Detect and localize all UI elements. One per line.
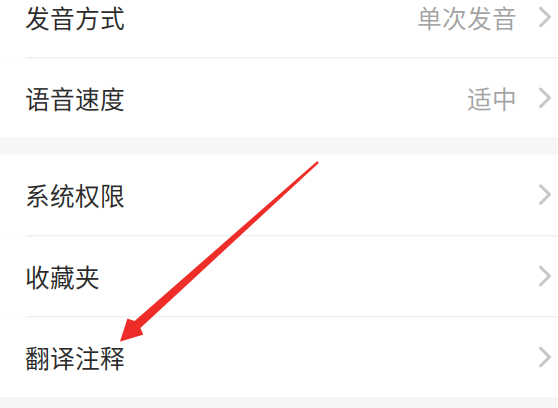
button[interactable]: 语音速度 — [0, 58, 558, 137]
staticText: 翻译注释 — [25, 339, 125, 375]
button[interactable]: 发音方式 — [0, 0, 558, 57]
button[interactable]: 翻译注释 — [0, 317, 558, 397]
staticText: 发音方式 — [25, 0, 125, 35]
staticText: 系统权限 — [25, 177, 125, 213]
staticText: 适中 — [467, 80, 517, 116]
staticText: 语音速度 — [25, 80, 125, 116]
staticText: 收藏夹 — [25, 258, 100, 294]
button[interactable]: 收藏夹 — [0, 236, 558, 316]
staticText: 单次发音 — [417, 0, 517, 35]
button[interactable]: 系统权限 — [0, 154, 558, 235]
